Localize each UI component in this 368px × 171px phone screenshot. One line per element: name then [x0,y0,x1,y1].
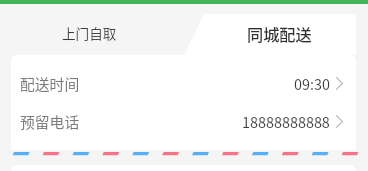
button[interactable]: 预留电话 [11,103,356,140]
staticText: 上门自取 [62,23,117,43]
button[interactable]: 同城配送 [190,14,368,54]
button[interactable]: 上门自取 [0,14,178,54]
staticText: 同城配送 [247,22,312,45]
staticText: 预留电话 [20,111,80,132]
other: Edit 预留电话 [336,115,343,128]
button[interactable]: 配送时间 [11,65,356,102]
staticText: 18888888888 [242,111,330,132]
staticText: 配送时间 [20,73,80,94]
staticText: 09:30 [294,73,330,94]
other: Edit 配送时间 [336,77,343,90]
